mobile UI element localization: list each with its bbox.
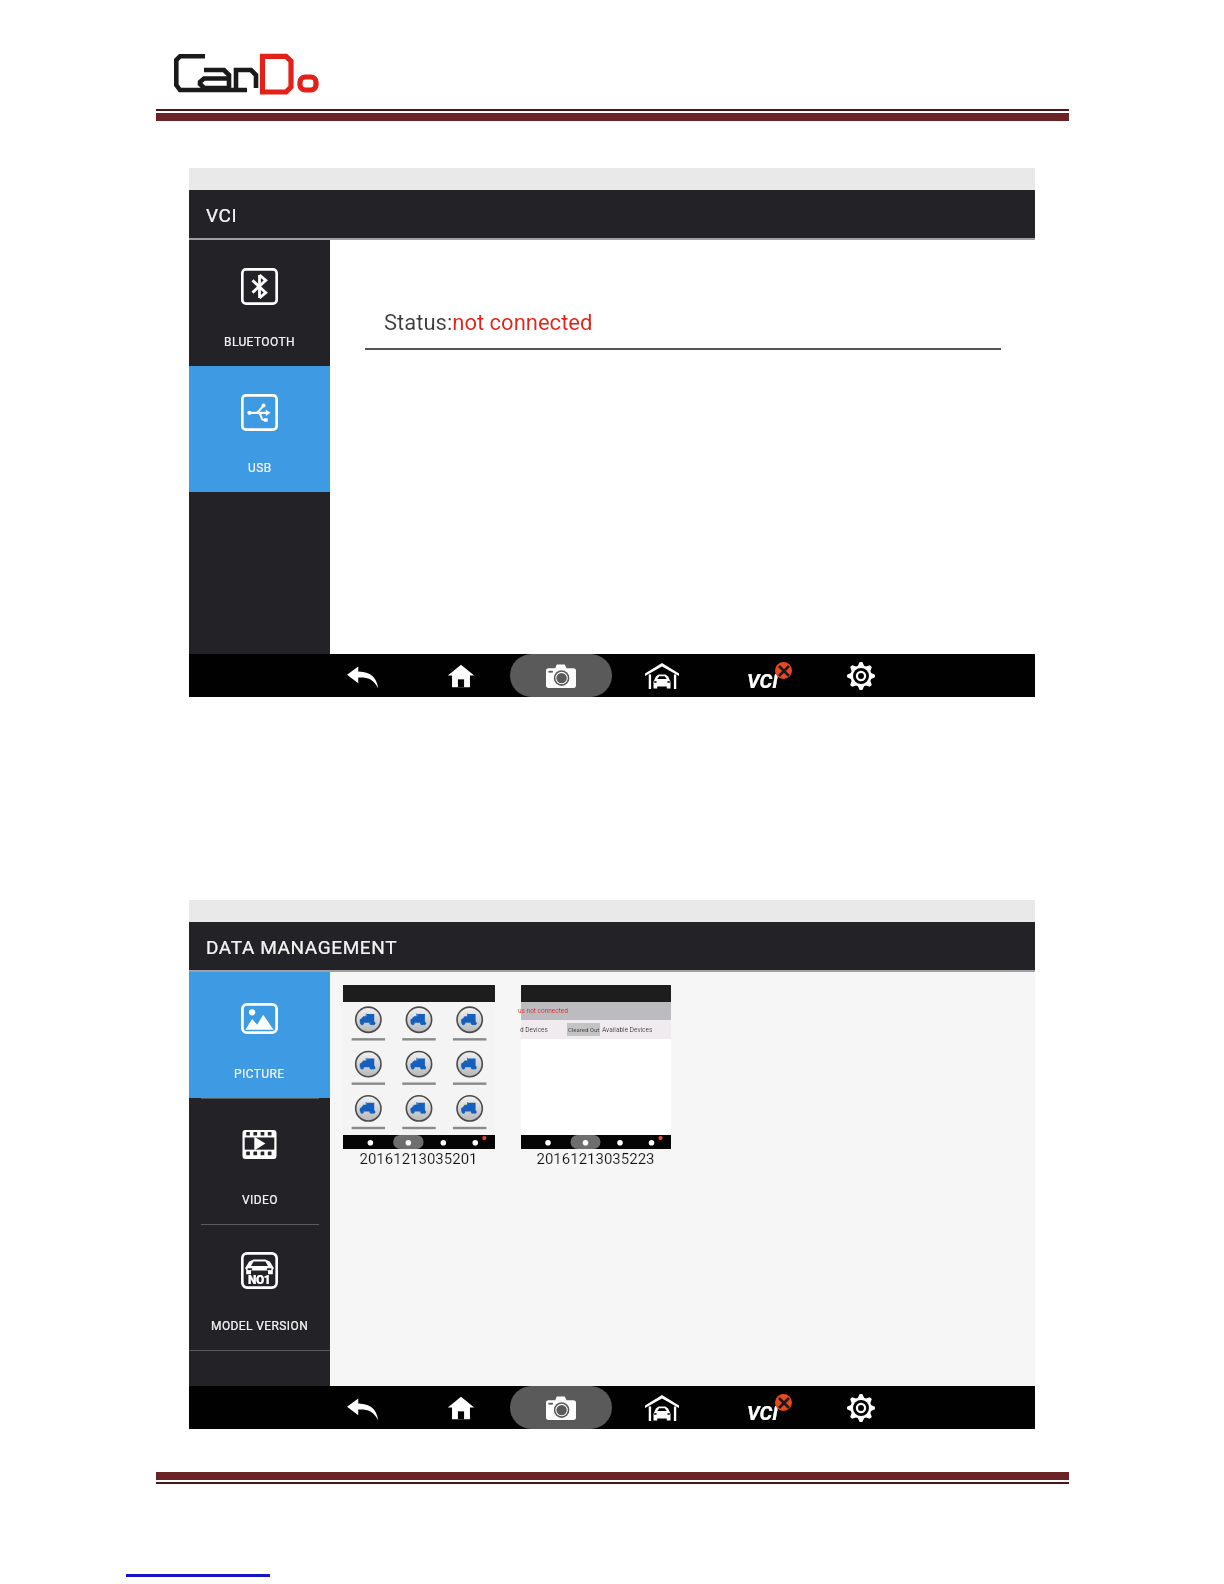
- button[interactable]: Settings: [826, 654, 896, 697]
- staticText: VCI: [747, 1401, 778, 1424]
- button[interactable]: Screenshot: [510, 654, 612, 697]
- button[interactable]: Home: [426, 1386, 496, 1429]
- button[interactable]: USB: [189, 366, 330, 492]
- button[interactable]: BLUETOOTH: [189, 240, 330, 366]
- button[interactable]: VIDEO: [189, 1098, 330, 1224]
- button[interactable]: Back: [328, 654, 398, 697]
- staticText: VCI: [206, 204, 238, 226]
- staticText: 20161213035223: [536, 1150, 655, 1168]
- staticText: USB: [248, 461, 272, 475]
- staticText: BLUETOOTH: [224, 335, 296, 349]
- staticText: Available Devices: [602, 1026, 653, 1034]
- button[interactable]: Garage: [627, 1386, 697, 1429]
- button[interactable]: Screenshot: [510, 1386, 612, 1429]
- button[interactable]: Garage: [627, 654, 697, 697]
- staticText: 20161213035201: [359, 1150, 478, 1168]
- staticText: Cleared Out: [568, 1026, 600, 1033]
- staticText: VIDEO: [242, 1193, 278, 1207]
- button[interactable]: Settings: [826, 1386, 896, 1429]
- button[interactable]: PICTURE: [189, 972, 330, 1098]
- staticText: us not connected: [518, 1007, 568, 1015]
- button[interactable]: 20161213035201: [338, 985, 499, 1167]
- staticText: DATA MANAGEMENT: [206, 936, 398, 958]
- button[interactable]: Home: [426, 654, 496, 697]
- button[interactable]: NO1: [189, 1224, 330, 1350]
- button[interactable]: VCI: [728, 654, 798, 697]
- button[interactable]: VCI: [728, 1386, 798, 1429]
- staticText: Status:not connected: [384, 310, 593, 336]
- button[interactable]: us not connected: [515, 985, 676, 1167]
- staticText: PICTURE: [234, 1067, 285, 1081]
- staticText: MODEL VERSION: [211, 1319, 309, 1333]
- staticText: VCI: [747, 669, 778, 692]
- staticText: NO1: [248, 1273, 271, 1287]
- staticText: d Devices: [520, 1026, 548, 1034]
- button[interactable]: Back: [328, 1386, 398, 1429]
